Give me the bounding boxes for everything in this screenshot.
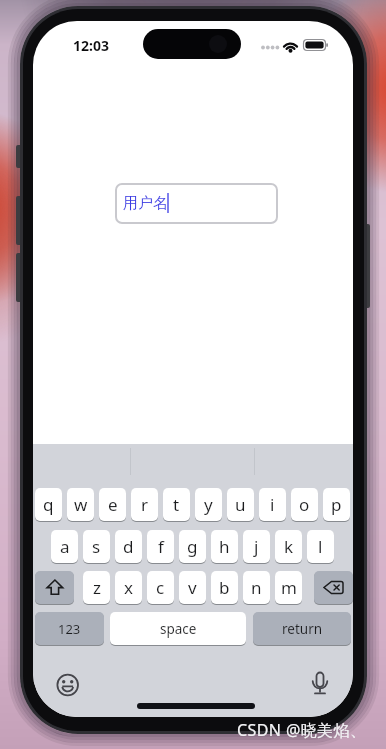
button[interactable]: 123 <box>35 612 104 645</box>
staticText: 12:03 <box>73 36 109 55</box>
button[interactable]: u <box>227 488 254 521</box>
button[interactable]: f <box>147 530 174 563</box>
staticText: l <box>318 535 323 558</box>
staticText: x <box>124 576 133 599</box>
button[interactable]: t <box>163 488 190 521</box>
staticText: j <box>254 535 259 558</box>
staticText: u <box>235 493 246 516</box>
staticText: f <box>158 535 164 558</box>
button[interactable]: i <box>259 488 286 521</box>
staticText: m <box>281 576 297 599</box>
staticText: 123 <box>58 620 81 638</box>
button[interactable]: k <box>275 530 302 563</box>
button[interactable]: s <box>83 530 110 563</box>
button[interactable]: z <box>83 571 110 604</box>
button[interactable]: x <box>115 571 142 604</box>
button[interactable]: y <box>195 488 222 521</box>
button[interactable]: a <box>51 530 78 563</box>
staticText: g <box>187 535 198 558</box>
staticText: c <box>156 576 165 599</box>
button[interactable]: e <box>99 488 126 521</box>
button[interactable] <box>35 571 74 604</box>
staticText: n <box>251 576 262 599</box>
button[interactable]: 用户名 <box>115 183 278 224</box>
staticText: r <box>141 493 149 516</box>
staticText: d <box>123 535 134 558</box>
staticText: b <box>219 576 230 599</box>
staticText: p <box>331 493 342 516</box>
staticText: a <box>60 535 70 558</box>
staticText: 用户名 <box>123 194 168 213</box>
staticText: w <box>74 493 88 516</box>
staticText: q <box>43 493 54 516</box>
staticText: return <box>282 620 323 638</box>
button[interactable]: r <box>131 488 158 521</box>
button[interactable]: w <box>67 488 94 521</box>
button[interactable] <box>53 670 83 700</box>
staticText: y <box>204 493 213 516</box>
button[interactable]: l <box>307 530 334 563</box>
staticText: i <box>270 493 275 516</box>
button[interactable]: d <box>115 530 142 563</box>
staticText: t <box>173 493 180 516</box>
button[interactable] <box>314 571 353 604</box>
button[interactable]: return <box>253 612 351 645</box>
staticText: v <box>188 576 197 599</box>
staticText: space <box>160 620 197 638</box>
button[interactable]: q <box>35 488 62 521</box>
button[interactable]: space <box>110 612 246 645</box>
button[interactable]: b <box>211 571 238 604</box>
staticText: o <box>299 493 310 516</box>
button[interactable]: c <box>147 571 174 604</box>
button[interactable]: p <box>323 488 350 521</box>
button[interactable] <box>305 670 335 700</box>
staticText: s <box>92 535 101 558</box>
staticText: CSDN @晓美焰、 <box>237 719 367 741</box>
button[interactable]: m <box>275 571 302 604</box>
button[interactable]: n <box>243 571 270 604</box>
button[interactable]: h <box>211 530 238 563</box>
staticText: k <box>284 535 294 558</box>
button[interactable]: g <box>179 530 206 563</box>
staticText: z <box>93 576 101 599</box>
staticText: e <box>108 493 118 516</box>
button[interactable]: v <box>179 571 206 604</box>
staticText: h <box>219 535 230 558</box>
button[interactable]: j <box>243 530 270 563</box>
button[interactable]: o <box>291 488 318 521</box>
